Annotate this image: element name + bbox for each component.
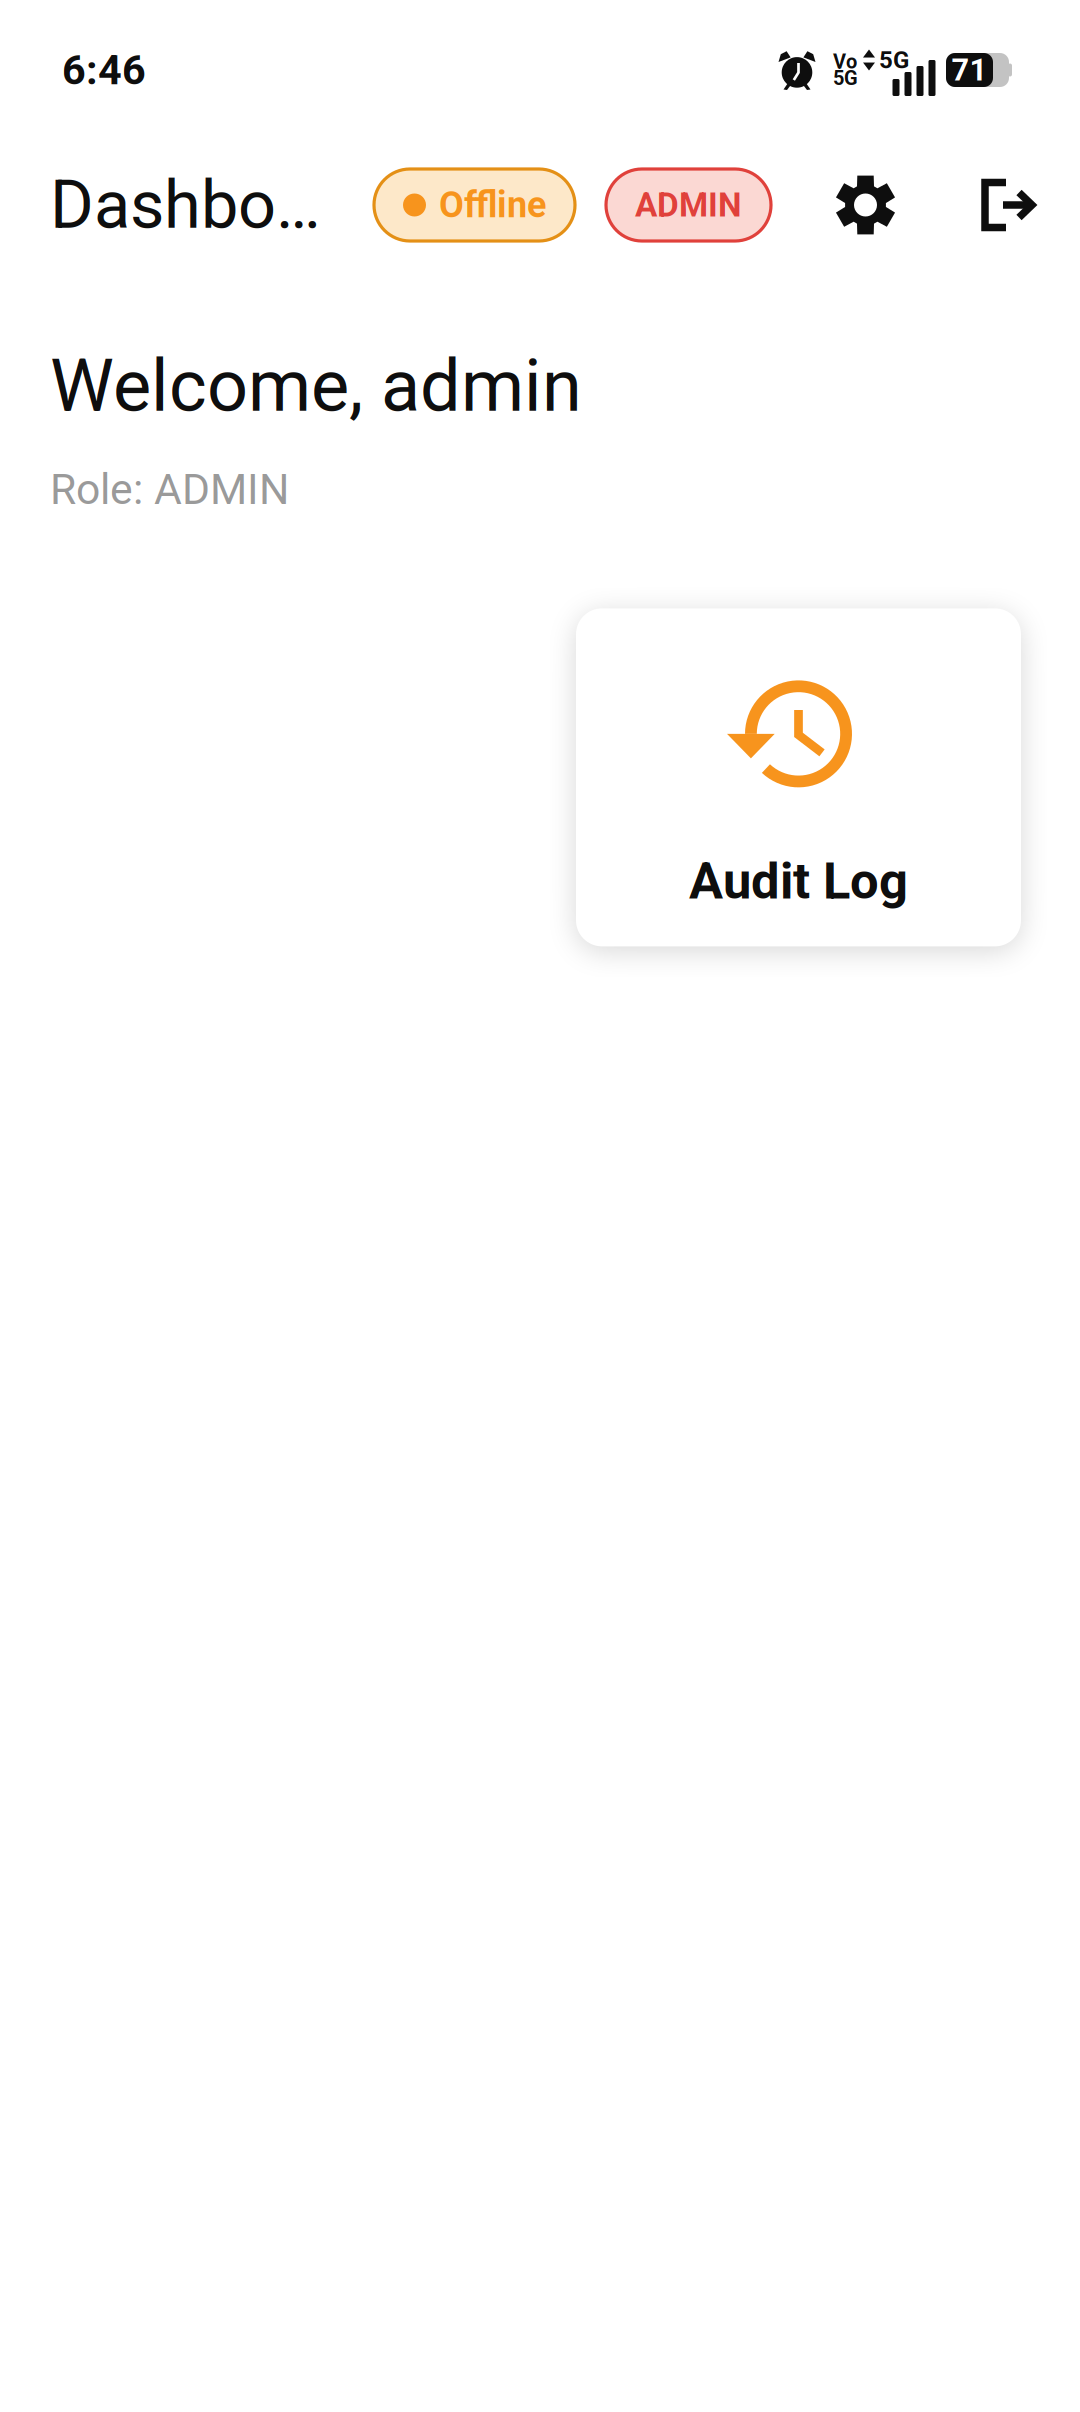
staticText: 71	[951, 52, 987, 88]
button[interactable]: Settings	[835, 174, 896, 235]
staticText: 6:46	[62, 46, 146, 94]
button[interactable]: ADMIN	[606, 169, 771, 241]
staticText: 5G	[833, 66, 858, 90]
button[interactable]: Offline	[374, 169, 575, 241]
button[interactable]: Log out	[977, 178, 1038, 231]
staticText: Offline	[439, 184, 546, 226]
staticText: Dashbo…	[50, 166, 321, 244]
staticText: Audit Log	[689, 851, 908, 911]
button[interactable]: Audit Log	[576, 608, 1021, 946]
staticText: Role: ADMIN	[50, 464, 289, 514]
staticText: ADMIN	[635, 185, 742, 225]
staticText: Welcome, admin	[50, 344, 582, 428]
staticText: Vo	[833, 50, 857, 73]
staticText: 5G	[879, 46, 909, 74]
